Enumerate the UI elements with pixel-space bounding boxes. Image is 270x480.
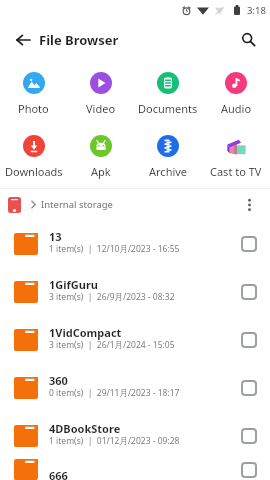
- staticText: 3 item(s) | 26/9月/2023 - 08:32: [49, 291, 175, 303]
- button[interactable]: 13: [0, 220, 270, 268]
- staticText: Video: [86, 101, 116, 116]
- button[interactable]: Search: [231, 20, 265, 59]
- button[interactable]: Apk: [67, 135, 134, 179]
- button[interactable]: Cast to TV: [202, 135, 270, 179]
- staticText: Archive: [149, 164, 188, 179]
- button[interactable]: Internal storage: [0, 189, 270, 220]
- button[interactable]: 666: [0, 459, 270, 480]
- button[interactable]: More options: [235, 189, 263, 220]
- staticText: Photo: [18, 101, 49, 116]
- button[interactable]: Select 4DBookStore: [234, 412, 264, 459]
- staticText: 1VidCompact: [49, 325, 122, 340]
- staticText: 3:18: [247, 4, 266, 17]
- staticText: 13: [49, 229, 62, 244]
- staticText: Documents: [138, 101, 198, 116]
- button[interactable]: 1VidCompact: [0, 316, 270, 364]
- button[interactable]: Audio: [202, 72, 270, 116]
- staticText: Apk: [91, 164, 111, 179]
- staticText: 4DBookStore: [49, 421, 121, 436]
- staticText: Audio: [221, 101, 252, 116]
- staticText: Downloads: [5, 164, 63, 179]
- staticText: 0 item(s) | 29/11月/2023 - 18:17: [49, 387, 180, 399]
- button[interactable]: Video: [67, 72, 134, 116]
- staticText: Internal storage: [41, 198, 113, 211]
- button[interactable]: 360: [0, 364, 270, 412]
- button[interactable]: Select 1VidCompact: [234, 316, 264, 364]
- button[interactable]: Select 1GifGuru: [234, 268, 264, 316]
- button[interactable]: Select 360: [234, 364, 264, 412]
- staticText: 666: [49, 468, 68, 480]
- staticText: File Browser: [39, 31, 119, 49]
- button[interactable]: Back: [0, 20, 39, 59]
- button[interactable]: 4DBookStore: [0, 412, 270, 459]
- button[interactable]: Select 13: [234, 220, 264, 268]
- staticText: 1GifGuru: [49, 277, 98, 292]
- button[interactable]: Select 666: [234, 459, 264, 480]
- button[interactable]: Archive: [134, 135, 202, 179]
- button[interactable]: Downloads: [0, 135, 67, 179]
- button[interactable]: Documents: [134, 72, 202, 116]
- staticText: 3 item(s) | 26/1月/2024 - 15:05: [49, 339, 175, 351]
- staticText: Cast to TV: [210, 164, 262, 179]
- button[interactable]: 1GifGuru: [0, 268, 270, 316]
- staticText: 360: [49, 373, 68, 388]
- staticText: 1 item(s) | 01/12月/2023 - 09:28: [49, 435, 180, 447]
- button[interactable]: Photo: [0, 72, 67, 116]
- staticText: 1 item(s) | 12/10月/2023 - 16:55: [49, 243, 180, 255]
